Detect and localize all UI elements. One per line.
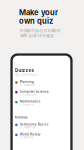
staticText: Mathematics: [20, 99, 41, 103]
staticText: Quizzes: [14, 67, 34, 73]
staticText: Make your: [19, 8, 58, 17]
staticText: 7 questions: [20, 136, 33, 139]
staticText: with just one app.: [20, 33, 55, 38]
staticText: Computer Science: [20, 90, 49, 93]
staticText: Archive: [14, 115, 27, 119]
staticText: instant quiz creation: [20, 28, 61, 33]
staticText: 8 questions: [20, 103, 34, 106]
staticText: World History: [20, 132, 41, 136]
staticText: 15 questions: [20, 126, 35, 129]
staticText: Planning: [20, 80, 34, 84]
staticText: 20 questions: [20, 93, 36, 96]
staticText: 12 questions: [20, 83, 35, 87]
staticText: My collections: [14, 73, 38, 77]
staticText: Astronomy Basics: [20, 122, 49, 126]
staticText: own quiz: [19, 16, 53, 25]
